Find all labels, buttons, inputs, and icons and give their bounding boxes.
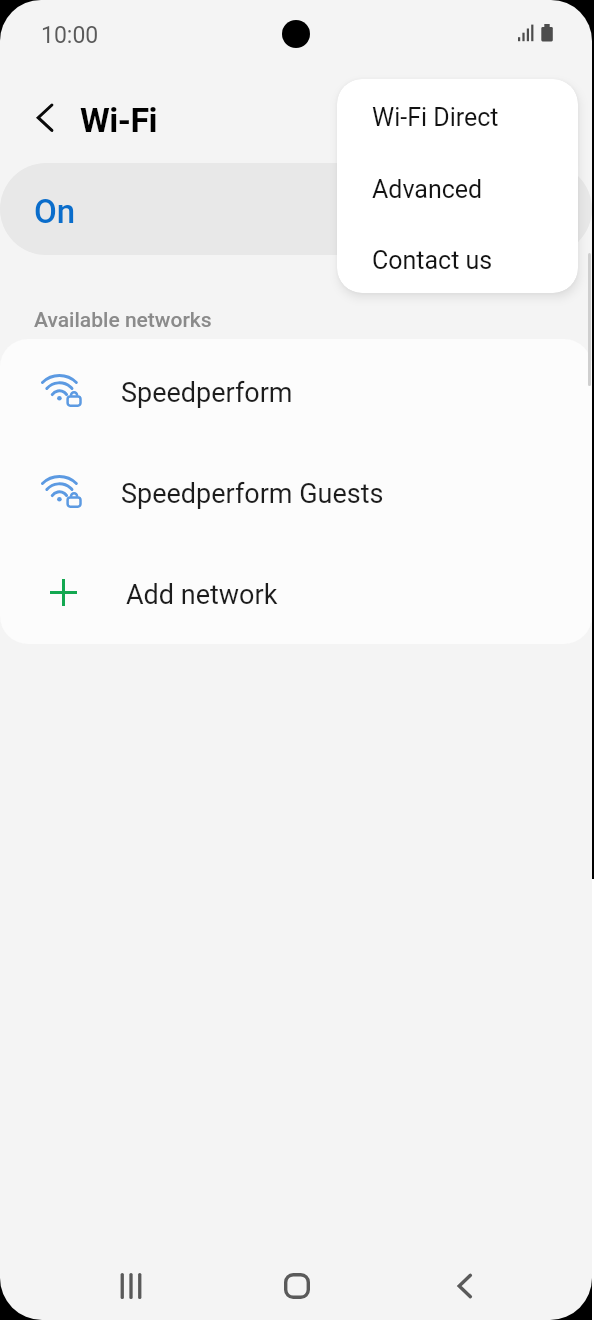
button[interactable]: Speedperform (0, 339, 592, 440)
button[interactable]: Advanced (337, 154, 578, 225)
staticText: Speedperform Guests (121, 478, 384, 510)
staticText: Available networks (34, 308, 212, 333)
button[interactable]: Speedperform Guests (0, 440, 592, 541)
button[interactable]: Wi-Fi Direct (337, 81, 578, 153)
staticText: On (34, 192, 76, 231)
button[interactable]: Back (423, 1247, 511, 1320)
staticText: Wi-Fi Direct (372, 103, 499, 132)
staticText: 10:00 (41, 22, 99, 49)
button[interactable]: Contact us (337, 225, 578, 293)
button[interactable]: On (0, 163, 592, 255)
button[interactable]: Home (253, 1247, 341, 1320)
staticText: Speedperform (121, 377, 293, 409)
button[interactable]: Add network (0, 541, 592, 642)
staticText: Contact us (372, 246, 493, 275)
staticText: Wi-Fi (80, 100, 158, 140)
button[interactable]: Navigate up (14, 92, 66, 144)
staticText: Advanced (372, 175, 483, 204)
button[interactable]: Recent apps (87, 1247, 175, 1320)
staticText: Add network (126, 579, 278, 611)
